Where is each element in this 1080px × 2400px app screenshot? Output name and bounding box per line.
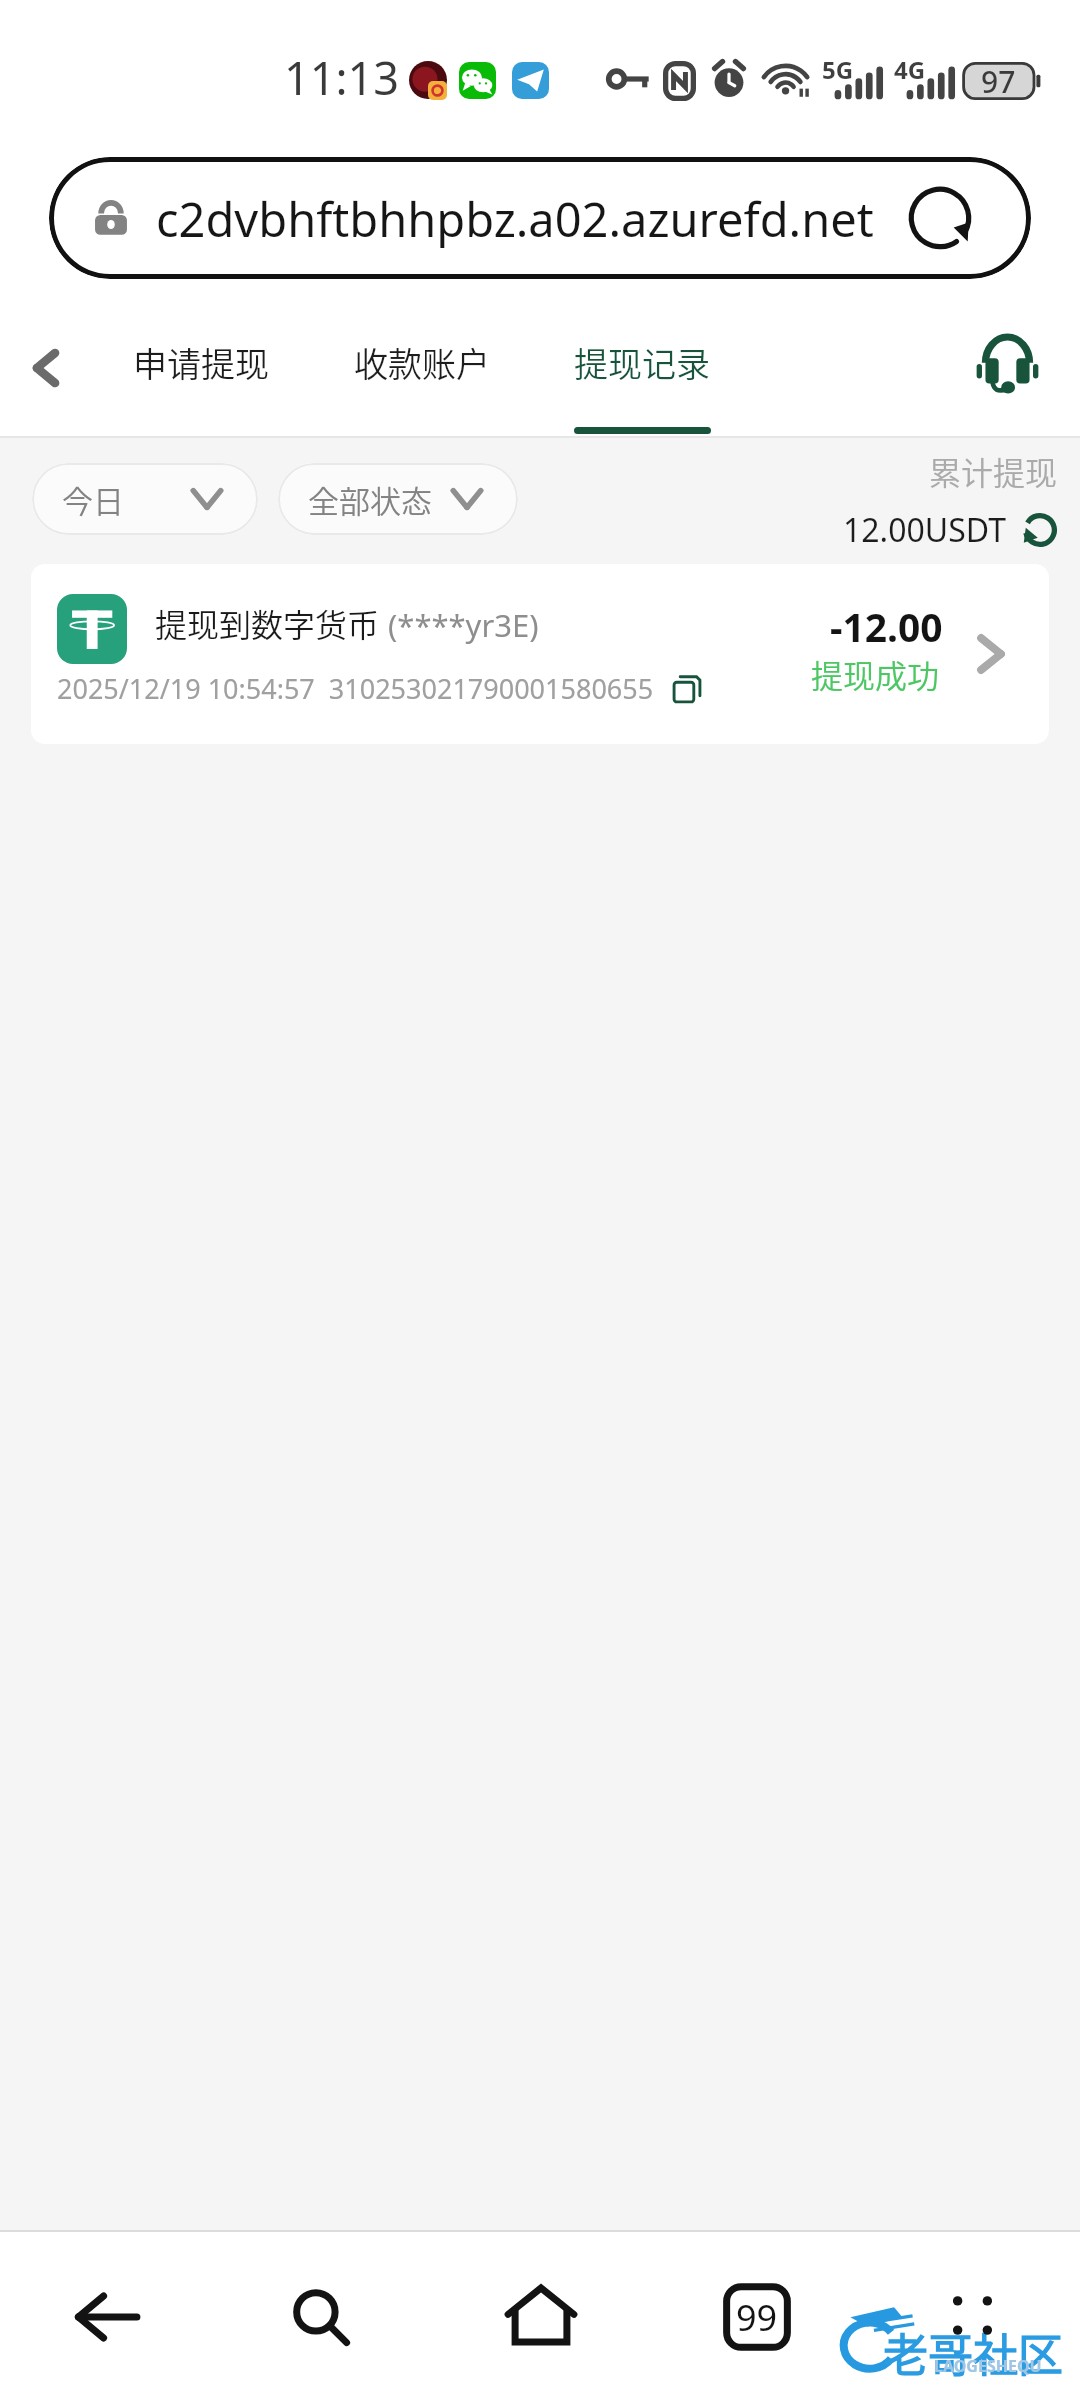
button[interactable]: Home	[483, 2259, 599, 2375]
staticText: 累计提现	[929, 448, 1058, 494]
staticText: 提现到数字货币	[155, 600, 380, 646]
button[interactable]: 全部状态	[278, 463, 518, 535]
button[interactable]: 收款账户	[342, 290, 502, 438]
staticText: 全部状态	[308, 477, 432, 522]
staticText: 收款账户	[354, 338, 490, 387]
staticText: 提现成功	[811, 651, 940, 697]
button[interactable]: Refresh	[895, 173, 985, 263]
button[interactable]: Back	[49, 2259, 165, 2375]
staticText: 老哥社区	[883, 2320, 1064, 2385]
staticText: 提现记录	[574, 338, 710, 387]
button[interactable]: More	[914, 2257, 1030, 2373]
button[interactable]: 提现到数字货币	[31, 564, 1049, 744]
button[interactable]: Search	[263, 2259, 379, 2375]
button[interactable]: 今日	[32, 463, 258, 535]
staticText: 4G	[894, 53, 926, 86]
button[interactable]: Copy	[670, 672, 704, 706]
staticText: 5G	[822, 53, 854, 86]
staticText: 99	[736, 2293, 778, 2342]
staticText: 12.00USDT	[843, 508, 1006, 552]
button[interactable]: 提现记录	[562, 290, 722, 438]
staticText: LAOGESHEQU	[934, 2355, 1042, 2377]
staticText: 申请提现	[133, 338, 269, 387]
button[interactable]: Back	[6, 328, 86, 408]
staticText: 2025/12/19 10:54:57 31025302179000158065…	[57, 670, 654, 707]
staticText: 11:13	[284, 47, 400, 108]
staticText: c2dvbhftbhhpbz.a02.azurefd.net	[156, 187, 874, 251]
button[interactable]: Refresh total	[1022, 512, 1058, 548]
button[interactable]: Customer service	[960, 318, 1054, 412]
staticText: (****yr3E)	[388, 604, 539, 646]
staticText: 97	[981, 61, 1016, 102]
staticText: 今日	[62, 477, 124, 522]
button[interactable]: Details	[947, 610, 1035, 698]
staticText: -12.00	[830, 600, 943, 653]
button[interactable]: 申请提现	[121, 290, 281, 438]
button[interactable]: c2dvbhftbhhpbz.a02.azurefd.net	[49, 157, 1031, 279]
button[interactable]: Tabs	[699, 2259, 815, 2375]
